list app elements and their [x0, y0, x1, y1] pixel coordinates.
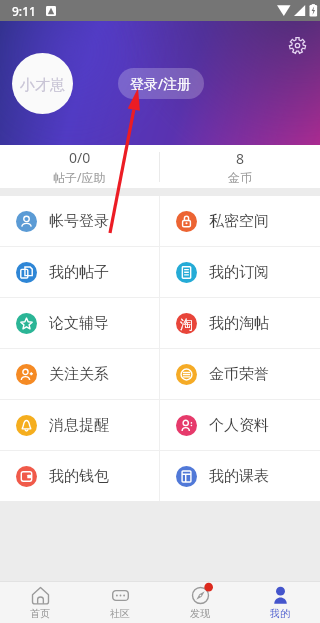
staticText: 发现: [190, 607, 210, 620]
button[interactable]: 帐号登录: [0, 196, 159, 246]
staticText: 消息提醒: [49, 416, 109, 435]
button[interactable]: 我的帖子: [0, 247, 159, 297]
staticText: 0/0: [69, 148, 91, 167]
staticText: 我的: [270, 607, 290, 620]
staticText: 我的淘帖: [209, 314, 269, 333]
button[interactable]: 社区: [80, 582, 160, 623]
button[interactable]: 关注关系: [0, 349, 159, 399]
button[interactable]: Avatar: [12, 53, 73, 114]
staticText: 我的课表: [209, 467, 269, 486]
staticText: 我的订阅: [209, 263, 269, 282]
button[interactable]: 论文辅导: [0, 298, 159, 348]
button[interactable]: 我的课表: [160, 451, 320, 501]
staticText: 帖子/应助: [53, 169, 106, 185]
staticText: 社区: [110, 607, 130, 620]
button[interactable]: 发现: [160, 582, 240, 623]
staticText: 首页: [30, 607, 50, 620]
button[interactable]: 0/0: [0, 145, 159, 188]
staticText: 登录/注册: [130, 74, 192, 93]
staticText: 8: [236, 149, 245, 168]
button[interactable]: 个人资料: [160, 400, 320, 450]
button[interactable]: 8: [160, 145, 320, 188]
staticText: 私密空间: [209, 212, 269, 231]
staticText: 金币: [228, 170, 252, 185]
staticText: 淘: [180, 316, 193, 332]
button[interactable]: 淘: [160, 298, 320, 348]
button[interactable]: 我的: [240, 582, 320, 623]
staticText: 小才崽: [20, 76, 65, 95]
staticText: 9:11: [12, 3, 36, 19]
staticText: 个人资料: [209, 416, 269, 435]
button[interactable]: Settings: [284, 32, 310, 58]
staticText: 论文辅导: [49, 314, 109, 333]
staticText: 我的帖子: [49, 263, 109, 282]
staticText: 金币荣誉: [209, 365, 269, 384]
staticText: 帐号登录: [49, 212, 109, 231]
button[interactable]: 我的钱包: [0, 451, 159, 501]
button[interactable]: 私密空间: [160, 196, 320, 246]
staticText: 我的钱包: [49, 467, 109, 486]
staticText: 关注关系: [49, 365, 109, 384]
button[interactable]: 消息提醒: [0, 400, 159, 450]
button[interactable]: 登录/注册: [118, 68, 204, 99]
button[interactable]: 金币荣誉: [160, 349, 320, 399]
button[interactable]: 首页: [0, 582, 80, 623]
button[interactable]: 我的订阅: [160, 247, 320, 297]
